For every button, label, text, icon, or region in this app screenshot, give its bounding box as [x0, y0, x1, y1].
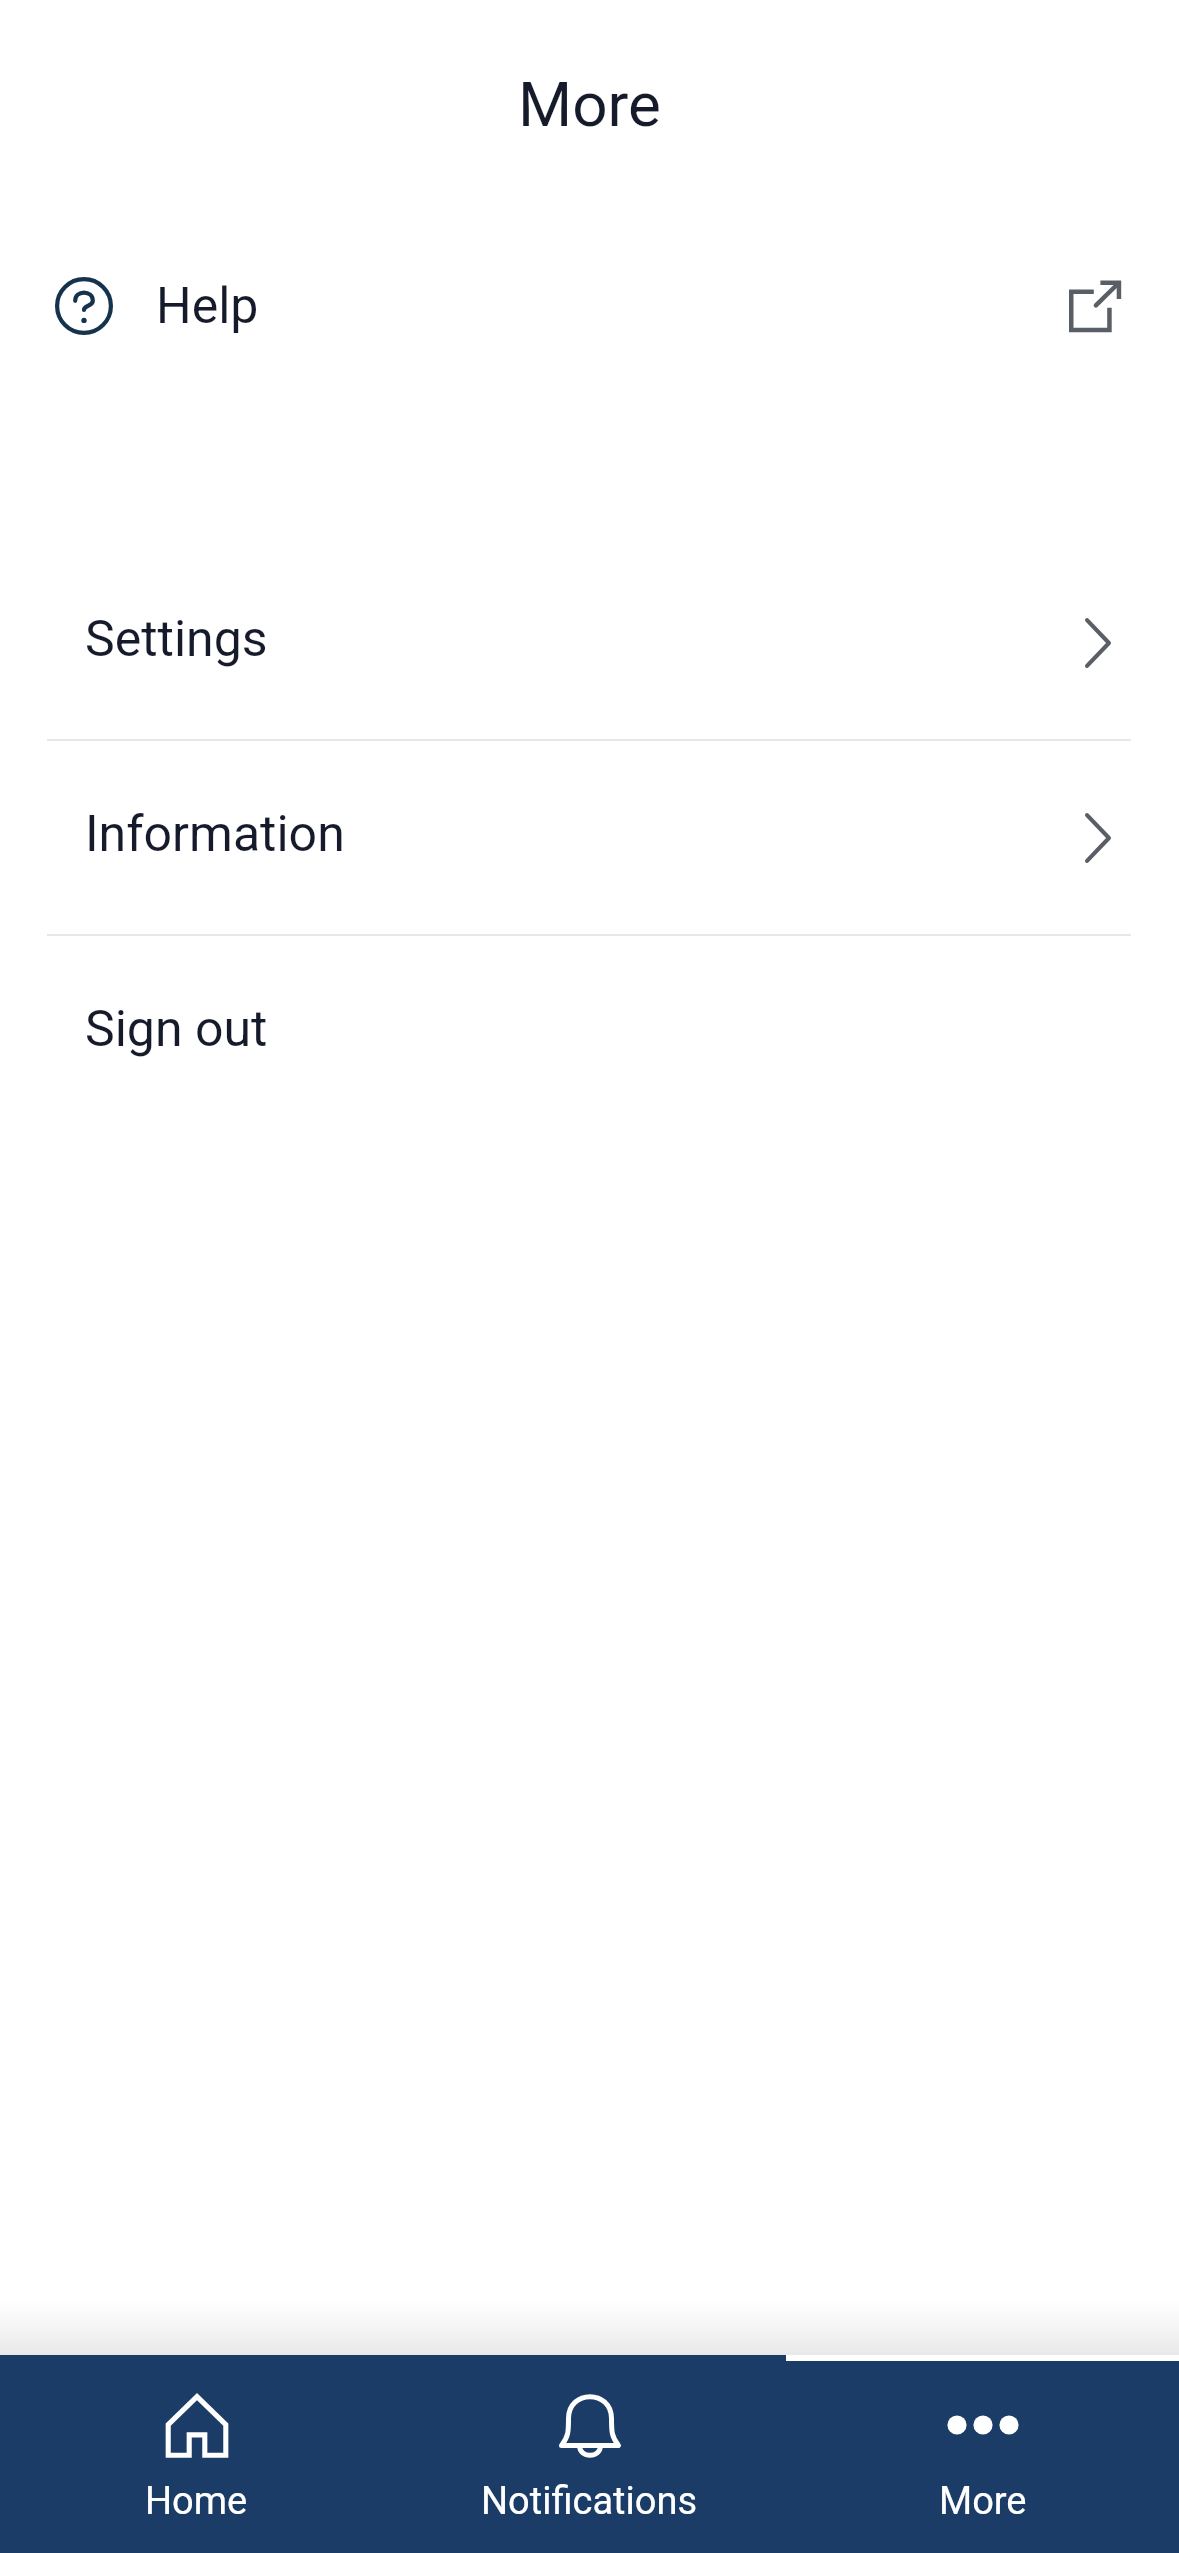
button[interactable]: More [786, 2355, 1179, 2553]
button[interactable]: Information [0, 741, 1179, 934]
button[interactable]: Help [0, 247, 1179, 365]
staticText: Sign out [85, 1000, 268, 1059]
staticText: Help [156, 277, 259, 336]
button[interactable]: Sign out [0, 936, 1179, 1129]
button[interactable]: Open help in a browser [1069, 280, 1121, 332]
staticText: More [0, 68, 1179, 141]
staticText: More [939, 2479, 1027, 2524]
button[interactable]: Home [0, 2355, 393, 2553]
staticText: Settings [85, 610, 268, 669]
button[interactable]: Notifications [393, 2355, 786, 2553]
button[interactable]: Settings [0, 546, 1179, 739]
staticText: Information [85, 805, 345, 864]
staticText: Home [145, 2479, 248, 2524]
staticText: Notifications [481, 2479, 698, 2524]
